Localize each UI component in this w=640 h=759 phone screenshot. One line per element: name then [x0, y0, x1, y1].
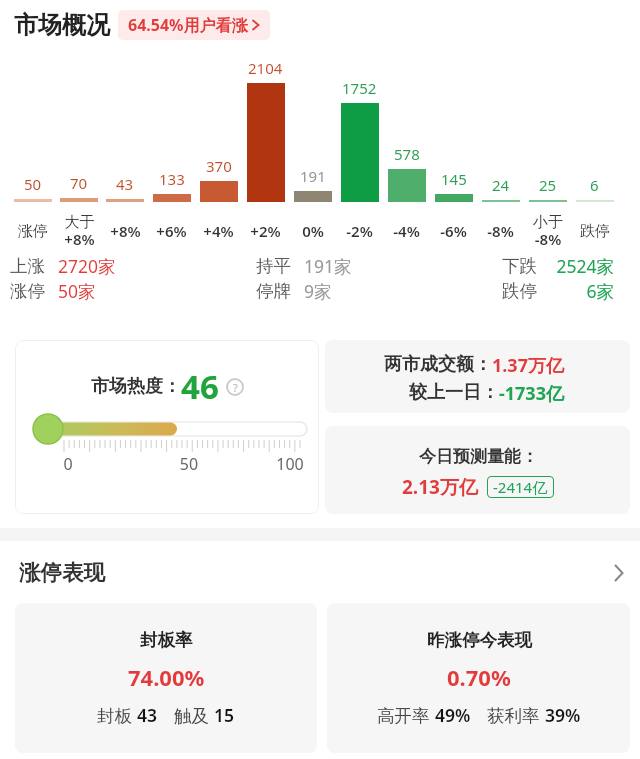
staticText: 6: [590, 175, 599, 195]
staticText: 涨停: [18, 222, 48, 241]
staticText: 触及: [174, 703, 214, 727]
staticText: 24: [492, 175, 510, 195]
staticText: 43: [116, 174, 134, 194]
staticText: 今日预测量能：: [419, 446, 538, 467]
staticText: +8%: [110, 221, 141, 241]
staticText: 46: [181, 364, 219, 409]
staticText: 两市成交额：: [384, 353, 492, 376]
staticText: 191家: [304, 254, 352, 278]
staticText: 50: [177, 453, 201, 475]
staticText: 370: [206, 156, 232, 176]
button[interactable]: 市场热度：: [15, 340, 319, 514]
staticText: 25: [539, 175, 557, 195]
staticText: +2%: [250, 221, 281, 241]
staticText: 2.13万亿: [402, 474, 478, 500]
button[interactable]: 昨涨停今表现: [327, 603, 630, 753]
staticText: 2524家: [550, 254, 614, 278]
button[interactable]: 封板率: [15, 603, 317, 753]
staticText: 578: [394, 144, 420, 164]
staticText: 43: [137, 703, 158, 727]
staticText: 封板: [97, 703, 137, 727]
staticText: 2720家: [58, 254, 116, 278]
staticText: 9家: [304, 279, 332, 303]
staticText: 小于 -8%: [533, 213, 563, 249]
staticText: 70: [70, 173, 88, 193]
staticText: 市场热度：: [91, 375, 181, 398]
staticText: -2414亿: [493, 477, 548, 497]
staticText: 下跌: [502, 255, 537, 277]
staticText: ?: [233, 380, 238, 395]
staticText: +4%: [203, 221, 234, 241]
staticText: 2104: [248, 58, 283, 78]
staticText: 50家: [58, 279, 96, 303]
staticText: 停牌: [256, 280, 291, 302]
staticText: 大于 +8%: [64, 213, 95, 249]
staticText: 145: [441, 169, 467, 189]
staticText: 15: [214, 703, 235, 727]
staticText: 较上一日：: [409, 381, 499, 404]
staticText: 0: [58, 453, 78, 475]
staticText: 100: [275, 453, 305, 475]
button[interactable]: 今日预测量能：: [325, 426, 630, 514]
button[interactable]: 64.54%用户看涨: [118, 10, 270, 40]
staticText: -4%: [393, 221, 420, 241]
staticText: -6%: [440, 221, 467, 241]
staticText: -8%: [487, 221, 514, 241]
staticText: 跌停: [502, 280, 537, 302]
staticText: 持平: [256, 255, 291, 277]
staticText: 跌停: [580, 222, 610, 241]
staticText: 获利率: [487, 703, 545, 727]
staticText: 133: [159, 169, 185, 189]
staticText: 191: [300, 166, 326, 186]
staticText: 64.54%用户看涨: [128, 14, 248, 36]
button[interactable]: 两市成交额：: [325, 340, 630, 413]
staticText: 1.37万亿: [492, 353, 564, 378]
staticText: +6%: [156, 221, 187, 241]
staticText: 1752: [342, 78, 377, 98]
staticText: 50: [24, 174, 42, 194]
staticText: 0%: [302, 221, 324, 241]
staticText: 封板率: [140, 629, 193, 651]
staticText: -1733亿: [499, 381, 564, 406]
staticText: -2%: [346, 221, 373, 241]
staticText: 高开率: [377, 703, 435, 727]
button[interactable]: 涨停表现: [0, 541, 640, 586]
staticText: 市场概况: [14, 10, 110, 40]
staticText: 74.00%: [128, 662, 205, 692]
staticText: 涨停表现: [19, 559, 105, 586]
staticText: 昨涨停今表现: [427, 629, 532, 651]
staticText: 49%: [435, 703, 471, 727]
staticText: 6家: [550, 279, 614, 303]
staticText: 39%: [545, 703, 581, 727]
staticText: 涨停: [10, 280, 45, 302]
staticText: 0.70%: [447, 662, 511, 692]
staticText: 上涨: [10, 255, 45, 277]
